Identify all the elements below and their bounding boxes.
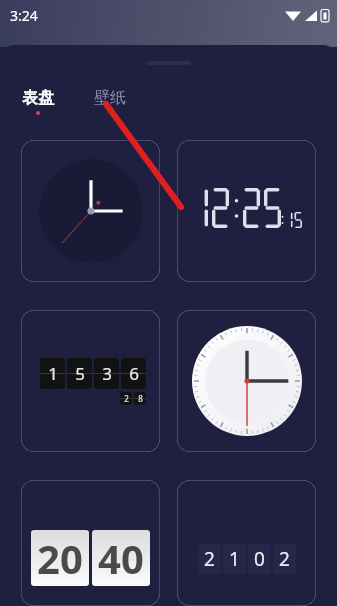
staticText: 0 bbox=[254, 546, 265, 572]
staticText: 6 bbox=[129, 362, 139, 385]
staticText: 40 bbox=[98, 531, 144, 585]
staticText: 8 bbox=[138, 393, 143, 404]
button[interactable]: 壁纸 bbox=[92, 87, 128, 116]
staticText: 1 bbox=[48, 362, 58, 385]
staticText: 2 bbox=[279, 546, 290, 572]
staticText: 2 bbox=[124, 393, 129, 404]
button[interactable]: Watch face preview bbox=[21, 310, 160, 452]
button[interactable]: Watch face preview bbox=[177, 480, 316, 606]
button[interactable]: Watch face preview bbox=[177, 310, 316, 452]
button[interactable]: Watch face preview bbox=[177, 140, 316, 282]
staticText: 20 bbox=[37, 531, 83, 585]
button[interactable]: Watch face preview bbox=[21, 480, 160, 606]
staticText: 5 bbox=[75, 362, 85, 385]
button[interactable]: 表盘 bbox=[20, 87, 56, 116]
staticText: 表盘 bbox=[22, 88, 54, 108]
staticText: 2 bbox=[204, 546, 215, 572]
staticText: 3:24 bbox=[10, 6, 38, 25]
staticText: 3 bbox=[102, 362, 112, 385]
staticText: 1 bbox=[229, 546, 240, 572]
staticText: 壁纸 bbox=[94, 88, 126, 108]
button[interactable]: Watch face preview bbox=[21, 140, 160, 282]
